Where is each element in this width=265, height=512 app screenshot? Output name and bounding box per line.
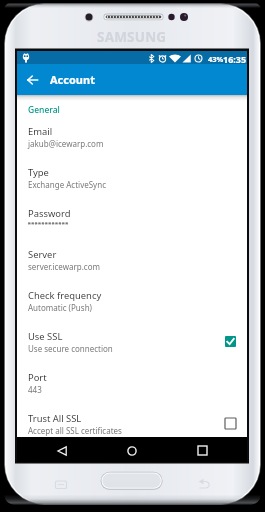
button[interactable]: Use SSL — [17, 330, 247, 371]
staticText: Account — [50, 72, 95, 87]
staticText: 443 — [28, 384, 42, 395]
button[interactable]: Port — [17, 371, 247, 412]
staticText: Exchange ActiveSync — [28, 179, 106, 190]
button[interactable]: Trust All SSL — [225, 418, 236, 429]
staticText: Server — [28, 248, 57, 261]
button[interactable]: Check frequency — [17, 289, 247, 330]
staticText: Use SSL — [28, 330, 63, 343]
staticText: General — [28, 104, 60, 116]
button[interactable]: Home — [107, 437, 157, 462]
staticText: jakub@icewarp.com — [28, 138, 104, 149]
staticText: Use secure connection — [28, 343, 113, 354]
staticText: Trust All SSL — [28, 412, 82, 425]
staticText: Check frequency — [28, 289, 102, 302]
staticText: Accept all SSL certificates — [28, 425, 122, 436]
button[interactable]: Use SSL — [225, 336, 236, 347]
button[interactable]: Back — [37, 437, 87, 462]
button[interactable]: Type — [17, 166, 247, 207]
button[interactable]: Trust All SSL — [17, 412, 247, 453]
staticText: Type — [28, 166, 49, 179]
staticText: Password — [28, 207, 71, 220]
button[interactable]: Password — [17, 207, 247, 248]
staticText: SAMSUNG — [97, 28, 167, 46]
staticText: Port — [28, 371, 47, 384]
staticText: 16:35 — [223, 53, 247, 65]
staticText: Email — [28, 125, 53, 138]
button[interactable]: Recent apps — [177, 437, 227, 462]
button[interactable]: Server — [17, 248, 247, 289]
button[interactable]: Email — [17, 125, 247, 166]
staticText: Automatic (Push) — [28, 302, 92, 313]
button[interactable]: Navigate up — [17, 64, 47, 95]
staticText: server.icewarp.com — [28, 261, 100, 272]
staticText: 43% — [208, 54, 224, 64]
